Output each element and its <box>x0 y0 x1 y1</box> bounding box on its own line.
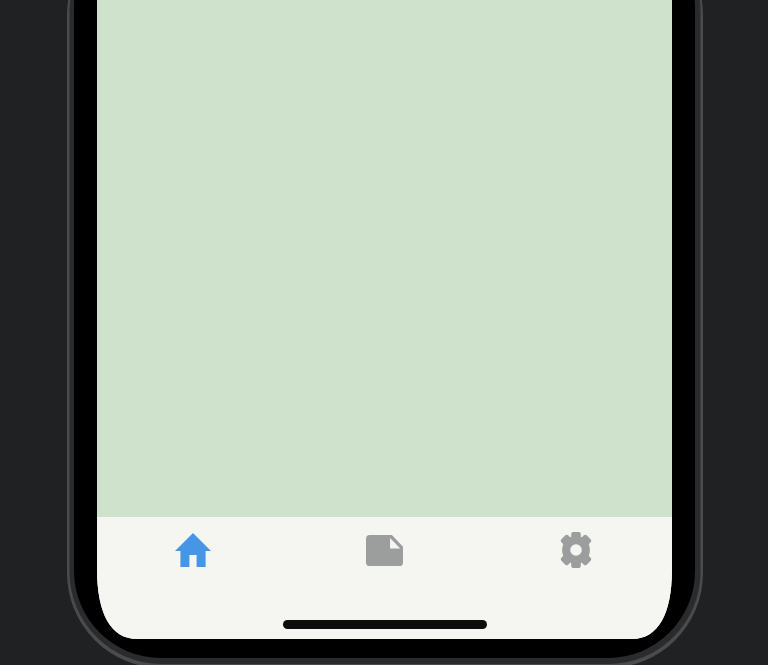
button[interactable] <box>97 532 288 568</box>
button[interactable] <box>480 532 672 568</box>
button[interactable] <box>288 532 480 568</box>
